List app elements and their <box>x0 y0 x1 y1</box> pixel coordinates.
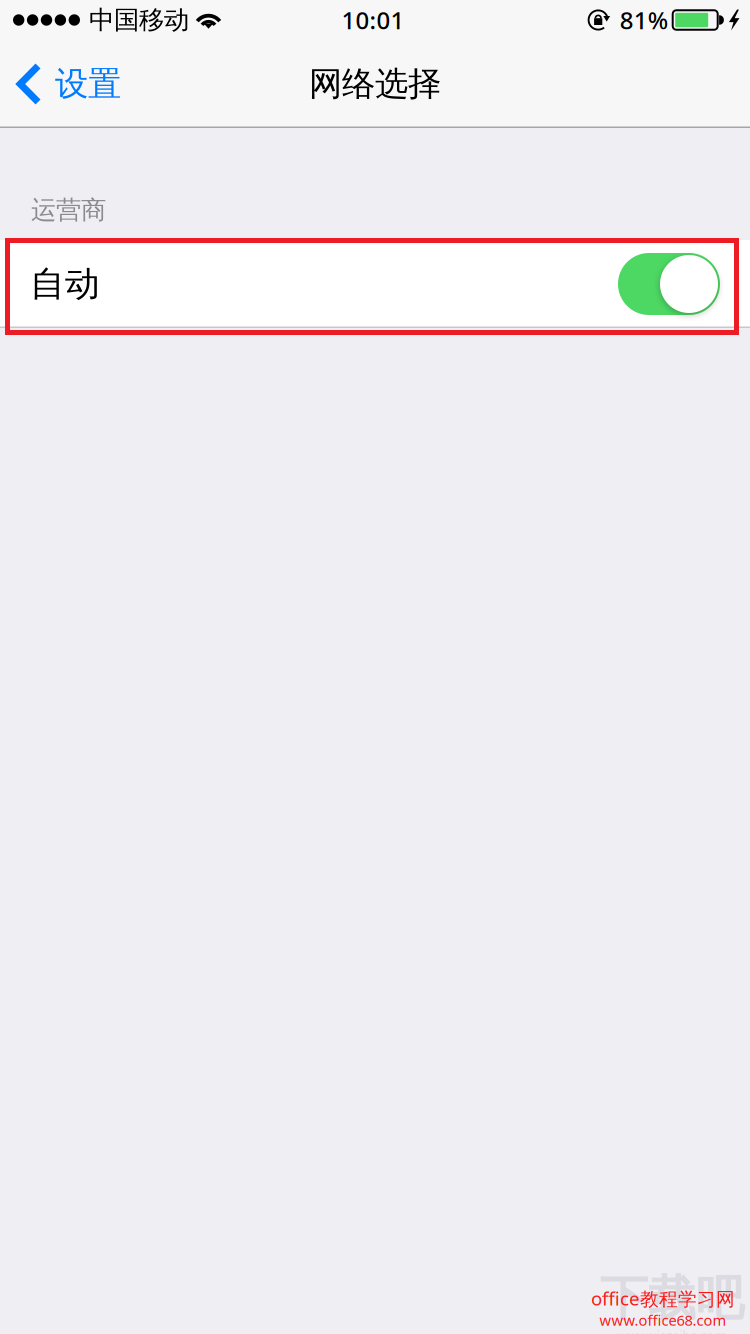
staticText: 自动 <box>30 262 100 306</box>
staticText: 运营商 <box>31 194 106 226</box>
staticText: 81% <box>620 4 668 36</box>
staticText: 下载吧 <box>600 1268 744 1329</box>
staticText: 10:01 <box>341 4 404 36</box>
staticText: www.xiazaiba.com <box>617 1327 726 1334</box>
staticText: 中国移动 <box>89 4 189 36</box>
button[interactable]: 设置 <box>0 40 135 128</box>
staticText: www.office68.com <box>599 1310 726 1330</box>
button[interactable]: 自动 <box>0 240 750 328</box>
staticText: 设置 <box>55 63 121 105</box>
staticText: 网络选择 <box>309 63 441 105</box>
staticText: office教程学习网 <box>591 1285 735 1311</box>
